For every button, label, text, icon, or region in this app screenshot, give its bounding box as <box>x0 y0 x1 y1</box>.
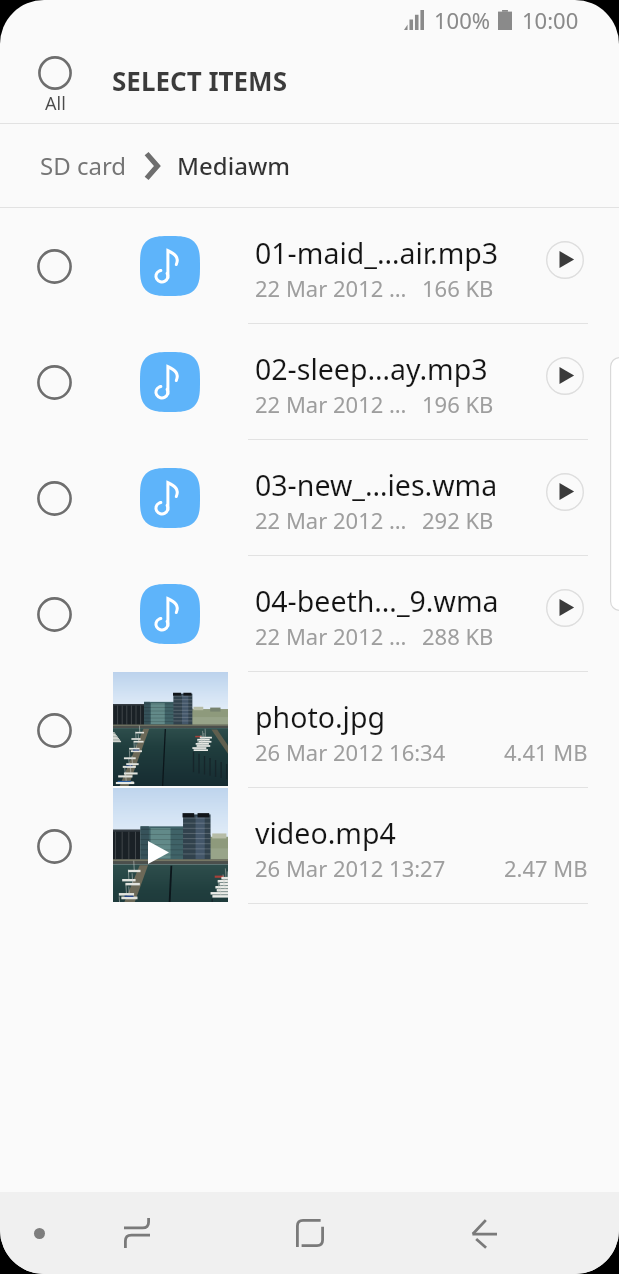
button[interactable]: Recents <box>88 1192 186 1274</box>
staticText: 04-beeth…_9.wma <box>255 582 494 621</box>
button[interactable]: video.mp4 <box>0 788 619 904</box>
staticText: 22 Mar 2012 … <box>255 505 407 535</box>
button[interactable]: Home <box>250 1192 370 1274</box>
button[interactable]: 03-new_…ies.wma <box>0 440 619 556</box>
staticText: 4.41 MB <box>504 737 588 767</box>
staticText: 03-new_…ies.wma <box>255 466 494 505</box>
staticText: 2.47 MB <box>504 853 588 883</box>
staticText: SELECT ITEMS <box>112 63 287 98</box>
staticText: 22 Mar 2012 … <box>255 621 407 651</box>
button[interactable]: All <box>30 52 80 120</box>
staticText: 292 KB <box>422 505 494 535</box>
staticText: 22 Mar 2012 … <box>255 389 407 419</box>
staticText: 166 KB <box>422 273 494 303</box>
staticText: video.mp4 <box>255 814 396 853</box>
staticText: 26 Mar 2012 13:27 <box>255 853 446 883</box>
staticText: 02-sleep…ay.mp3 <box>255 350 488 389</box>
button[interactable]: Play <box>546 473 584 511</box>
button[interactable]: SD card <box>40 149 127 182</box>
button[interactable]: 04-beeth…_9.wma <box>0 556 619 672</box>
staticText: 22 Mar 2012 … <box>255 273 407 303</box>
staticText: All <box>45 91 66 116</box>
staticText: 01-maid_…air.mp3 <box>255 234 494 273</box>
staticText: 10:00 <box>522 5 579 35</box>
button[interactable]: 01-maid_…air.mp3 <box>0 208 619 324</box>
button[interactable]: Show navigation bar <box>0 1192 78 1274</box>
staticText: photo.jpg <box>255 698 385 737</box>
staticText: 196 KB <box>422 389 494 419</box>
button[interactable]: 02-sleep…ay.mp3 <box>0 324 619 440</box>
button[interactable]: Mediawm <box>177 149 290 182</box>
button[interactable]: Play <box>546 357 584 395</box>
button[interactable]: Play <box>546 589 584 627</box>
staticText: 288 KB <box>422 621 494 651</box>
staticText: 100% <box>434 5 491 35</box>
button[interactable]: photo.jpg <box>0 672 619 788</box>
staticText: 26 Mar 2012 16:34 <box>255 737 446 767</box>
button[interactable]: Back <box>416 1192 551 1274</box>
button[interactable]: Play <box>546 241 584 279</box>
